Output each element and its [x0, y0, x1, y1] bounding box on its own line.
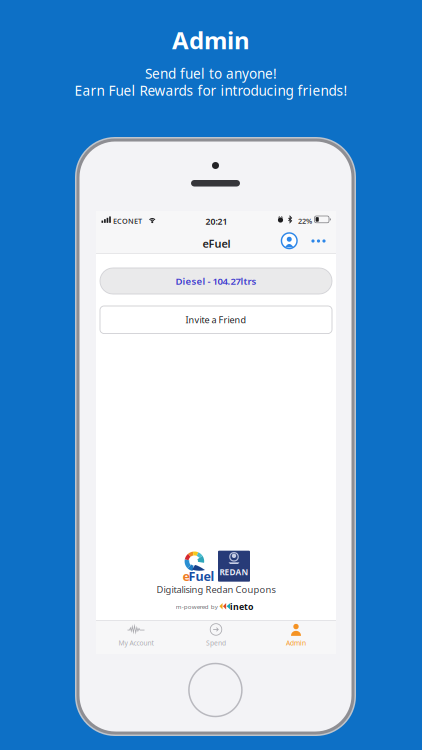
- staticText: Admin: [172, 24, 250, 56]
- staticText: Spend: [206, 638, 226, 648]
- button[interactable]: Spend: [176, 620, 256, 654]
- staticText: 22%: [298, 216, 312, 226]
- button[interactable]: Invite a Friend: [100, 306, 332, 333]
- staticText: Send fuel to anyone!: [145, 64, 277, 83]
- staticText: Invite a Friend: [185, 314, 246, 326]
- button[interactable]: Admin: [256, 620, 336, 654]
- staticText: Fuel: [188, 568, 214, 585]
- staticText: 20:21: [205, 215, 227, 227]
- staticText: ECONET: [113, 216, 142, 226]
- button[interactable]: Account: [279, 231, 299, 250]
- staticText: Digitalising Redan Coupons: [156, 583, 275, 596]
- staticText: m-powered by: [176, 602, 218, 611]
- staticText: My Account: [118, 638, 153, 648]
- staticText: e: [182, 568, 189, 585]
- button[interactable]: My Account: [96, 620, 176, 654]
- button[interactable]: More: [307, 233, 330, 249]
- button[interactable]: Diesel - 104.27ltrs: [100, 268, 332, 294]
- staticText: REDAN: [219, 566, 248, 578]
- staticText: Earn Fuel Rewards for introducing friend…: [74, 81, 347, 100]
- staticText: Admin: [286, 638, 306, 648]
- staticText: Diesel - 104.27ltrs: [175, 274, 256, 288]
- staticText: eFuel: [202, 236, 230, 251]
- staticText: ineto: [230, 600, 254, 612]
